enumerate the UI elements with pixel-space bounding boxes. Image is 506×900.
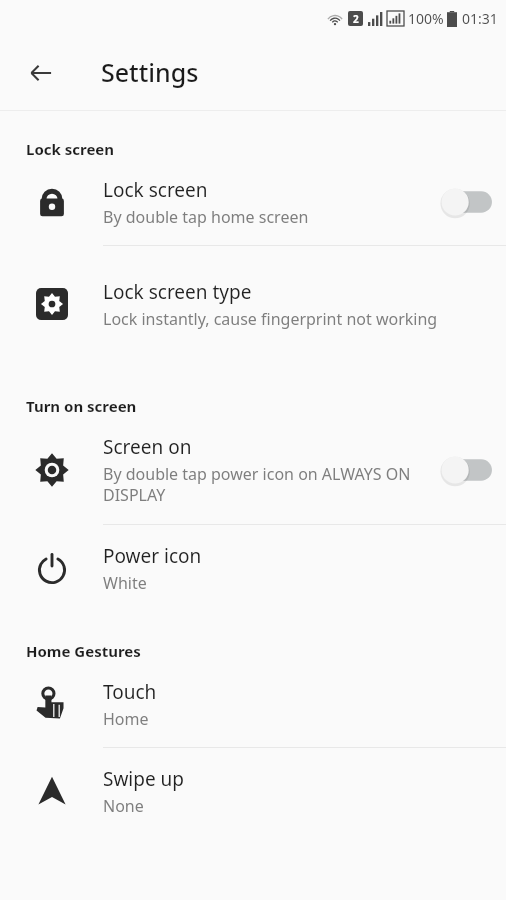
- staticText: Swipe up: [103, 766, 185, 792]
- staticText: None: [103, 795, 144, 817]
- staticText: Lock screen type: [103, 279, 252, 305]
- staticText: Turn on screen: [26, 396, 137, 416]
- staticText: 100%: [408, 9, 444, 28]
- button[interactable]: Toggle: [441, 453, 493, 487]
- staticText: Lock screen: [26, 139, 115, 159]
- button[interactable]: Screen on: [0, 416, 506, 524]
- staticText: Lock screen: [103, 177, 208, 203]
- staticText: By double tap power icon on ALWAYS ON DI…: [103, 463, 414, 506]
- staticText: Touch: [103, 679, 157, 705]
- staticText: Power icon: [103, 543, 202, 569]
- staticText: 01:31: [462, 9, 498, 28]
- button[interactable]: Lock screen: [0, 159, 506, 245]
- staticText: White: [103, 572, 147, 594]
- button[interactable]: Touch: [0, 661, 506, 747]
- staticText: Settings: [101, 55, 199, 89]
- staticText: By double tap home screen: [103, 206, 309, 228]
- button[interactable]: Lock screen type: [0, 246, 506, 362]
- staticText: Screen on: [103, 434, 192, 460]
- staticText: Home: [103, 708, 149, 730]
- staticText: 2: [353, 12, 359, 26]
- button[interactable]: Power icon: [0, 525, 506, 611]
- button[interactable]: Toggle: [441, 185, 493, 219]
- staticText: Lock instantly, cause fingerprint not wo…: [103, 308, 438, 330]
- staticText: Home Gestures: [26, 641, 141, 661]
- button[interactable]: Swipe up: [0, 748, 506, 834]
- button[interactable]: Back: [17, 49, 65, 97]
